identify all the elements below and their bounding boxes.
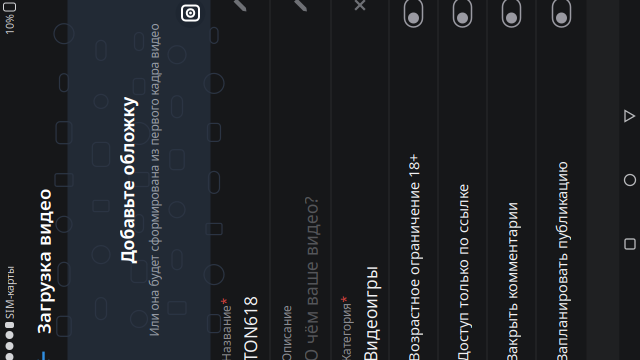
staticText: Категория [138,198,197,214]
button[interactable]: Категория [122,191,518,248]
button[interactable]: Название [122,70,518,129]
button[interactable]: Возрастное ограничение 18+ [122,249,518,297]
button[interactable]: Доступ только по ссылке [122,298,518,346]
button[interactable]: Описание [122,130,518,190]
staticText: Доступ только по ссылке [138,313,316,332]
staticText: Или она будет сформирована из первого ка… [163,6,476,22]
staticText: Возрастное ограничение 18+ [138,264,346,283]
staticText: Описание [138,138,195,154]
staticText: TON618 [138,99,204,122]
staticText: Видеоигры [138,219,234,242]
button[interactable]: Закрыть комментарии [122,347,518,360]
staticText: Название [138,78,195,94]
staticText: О чём ваше видео? [138,159,304,182]
